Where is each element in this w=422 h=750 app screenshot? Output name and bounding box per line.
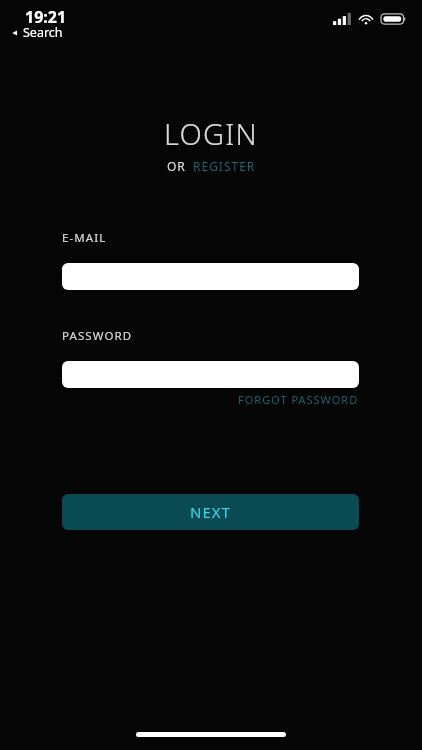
staticText: PASSWORD (62, 328, 133, 344)
staticText: E-MAIL (62, 230, 107, 246)
button[interactable]: REGISTER (193, 158, 256, 174)
button[interactable]: Back to Search (11, 24, 63, 41)
button[interactable]: NEXT (62, 494, 359, 530)
staticText: 19:21 (25, 6, 67, 28)
staticText: FORGOT PASSWORD (238, 392, 359, 407)
staticText: NEXT (190, 502, 231, 522)
staticText: OR (167, 158, 186, 174)
staticText: REGISTER (193, 158, 256, 174)
button[interactable]: FORGOT PASSWORD (62, 392, 359, 407)
button[interactable]: Text input field (62, 361, 359, 388)
button[interactable]: Text input field (62, 263, 359, 290)
staticText: Search (23, 24, 63, 41)
staticText: LOGIN (164, 114, 258, 153)
